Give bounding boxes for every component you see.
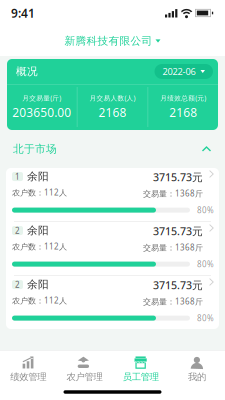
staticText: 绩效管理: [10, 371, 46, 383]
button[interactable]: 2: [6, 276, 219, 329]
staticText: 2022-06: [162, 65, 195, 78]
staticText: 月交易人数(人): [89, 94, 135, 102]
staticText: 余阳: [27, 278, 49, 291]
staticText: 2: [15, 279, 20, 290]
staticText: 我的: [188, 371, 206, 383]
button[interactable]: 员工管理: [112, 355, 169, 384]
staticText: 9:41: [11, 5, 35, 21]
staticText: 3715.73元: [153, 170, 203, 184]
staticText: 农户数：112人: [12, 241, 67, 252]
staticText: 交易量：1368斤: [143, 188, 203, 199]
staticText: 3715.73元: [153, 224, 203, 238]
staticText: 交易量：1368斤: [143, 242, 203, 253]
staticText: 2168: [169, 104, 197, 120]
staticText: 余阳: [27, 170, 49, 183]
staticText: 农户数：112人: [12, 187, 67, 198]
staticText: 80%: [197, 259, 214, 269]
button[interactable]: 1: [6, 168, 219, 221]
staticText: 80%: [197, 313, 214, 323]
button[interactable]: 2022-06: [154, 64, 213, 79]
staticText: 2: [15, 225, 20, 236]
staticText: 概况: [16, 65, 38, 78]
staticText: 2168: [98, 104, 126, 120]
button[interactable]: 2: [6, 222, 219, 275]
staticText: 80%: [197, 205, 214, 215]
button[interactable]: 收起: [197, 141, 216, 157]
staticText: 新腾科技有限公司: [64, 34, 152, 47]
staticText: 农户管理: [66, 371, 102, 383]
button[interactable]: 绩效管理: [0, 355, 56, 384]
staticText: 北于市场: [13, 142, 57, 155]
staticText: 3715.73元: [153, 278, 203, 292]
staticText: 余阳: [27, 224, 49, 237]
staticText: 月交易量(斤): [22, 94, 61, 102]
button[interactable]: 我的: [169, 355, 225, 384]
staticText: 农户数：112人: [12, 295, 67, 306]
button[interactable]: 农户管理: [56, 355, 112, 384]
staticText: 月绩效总额(元): [160, 94, 206, 102]
staticText: 员工管理: [123, 371, 159, 383]
staticText: 203650.00: [12, 104, 71, 120]
staticText: 1: [15, 171, 20, 182]
button[interactable]: 新腾科技有限公司: [0, 26, 225, 56]
staticText: 交易量：1368斤: [143, 296, 203, 307]
